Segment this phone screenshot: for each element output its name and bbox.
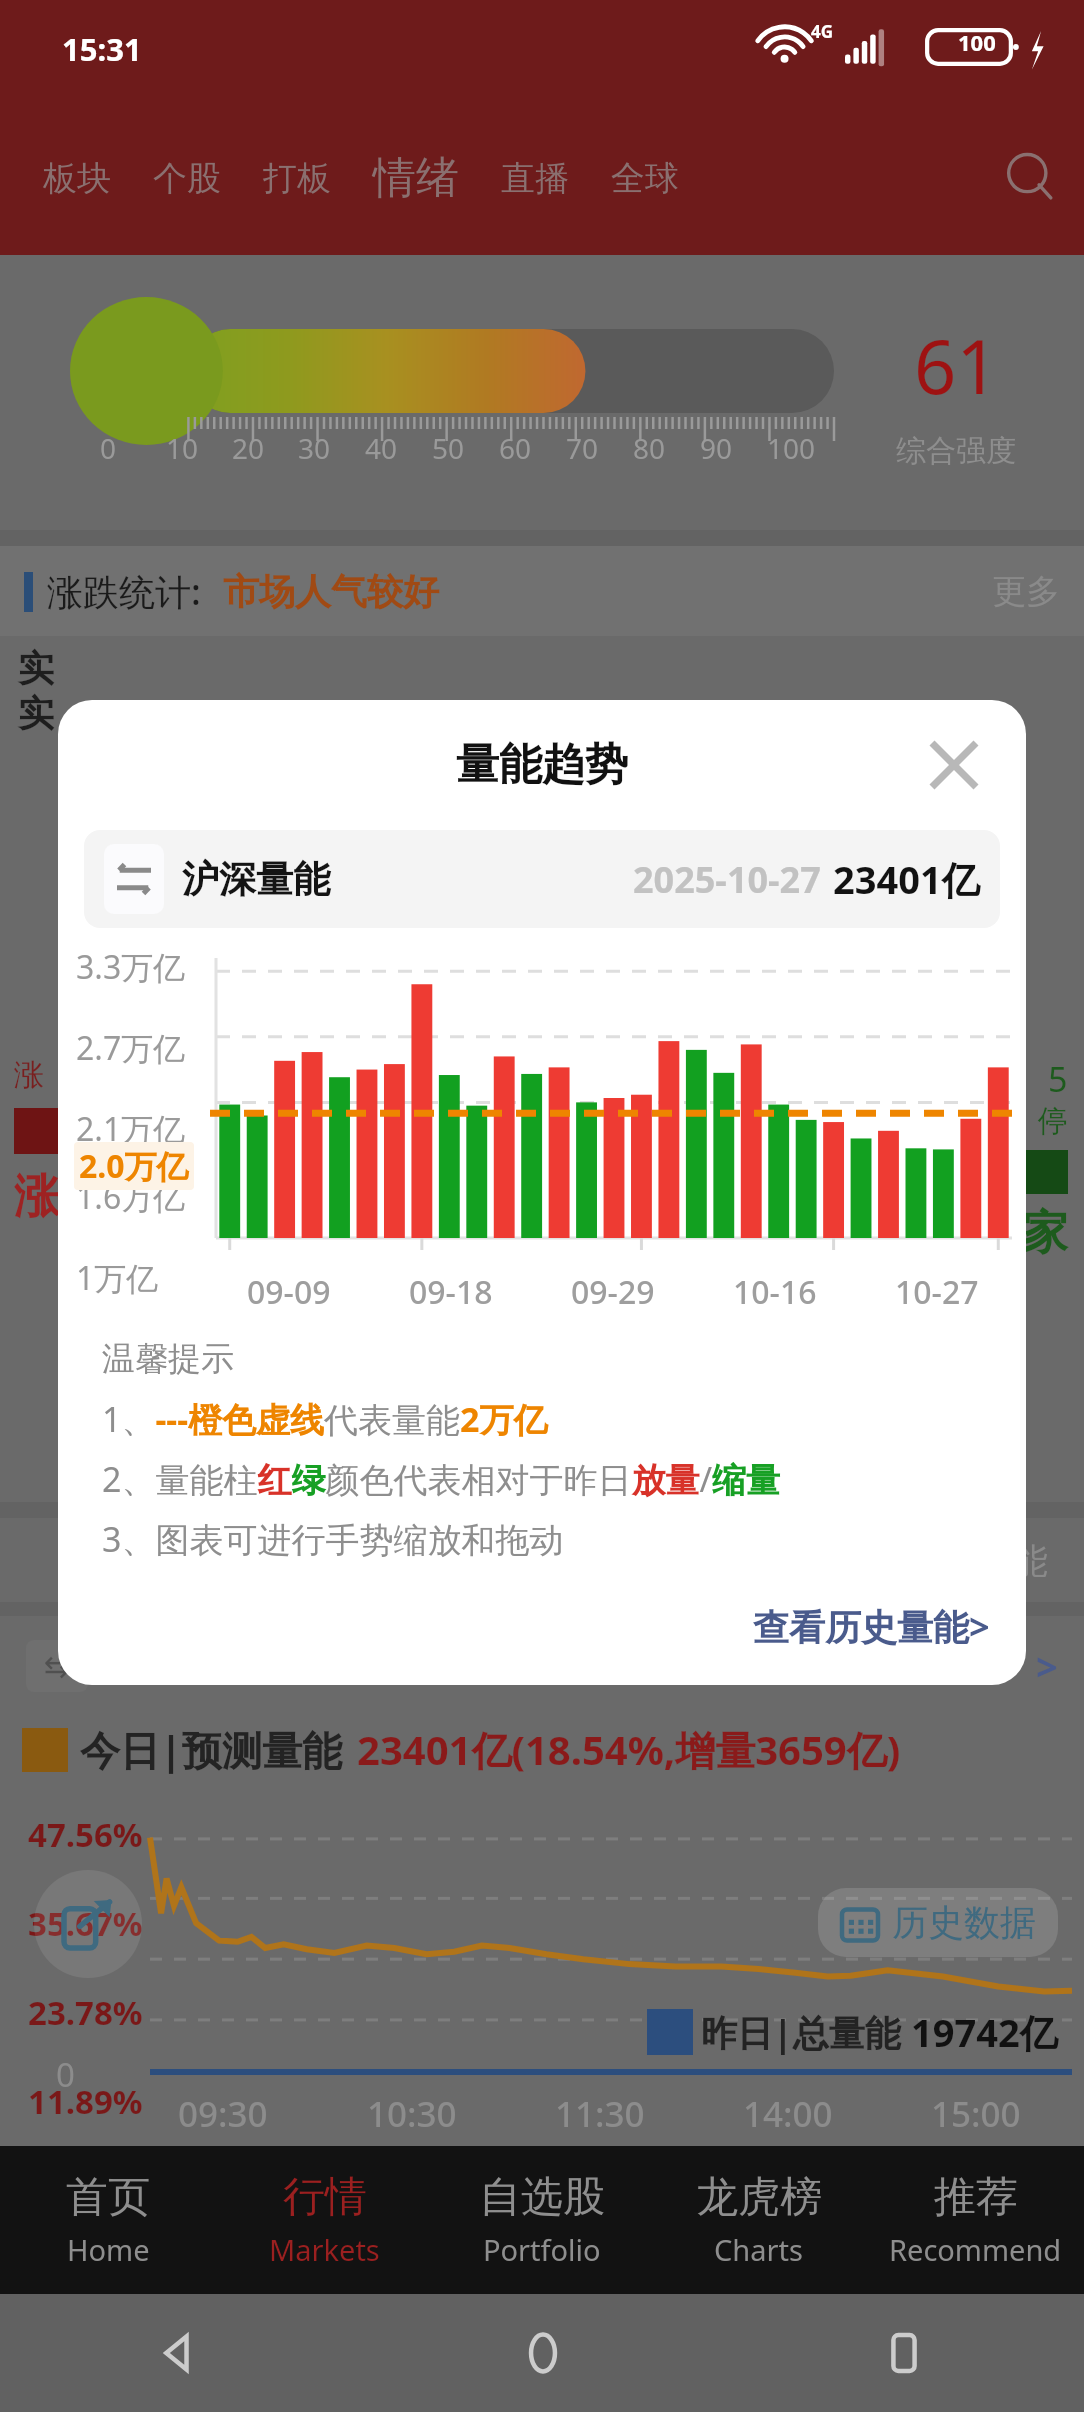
- staticText: 4G: [811, 20, 834, 43]
- staticText: 90: [700, 429, 733, 467]
- staticText: 昨日|总量能: [701, 2008, 901, 2057]
- button[interactable]: 推荐: [867, 2146, 1084, 2294]
- staticText: 23401亿: [833, 853, 980, 905]
- staticText: 涨: [14, 1056, 44, 1094]
- button[interactable]: 行情: [216, 2146, 433, 2294]
- button[interactable]: 龙虎榜: [650, 2146, 867, 2294]
- staticText: 涨跌统计:: [47, 567, 201, 616]
- staticText: 10:30: [367, 2090, 457, 2138]
- staticText: 停: [1038, 1102, 1068, 1140]
- staticText: 龙虎榜: [696, 2171, 822, 2224]
- staticText: 14:00: [743, 2090, 833, 2138]
- staticText: 涨: [14, 1168, 60, 1226]
- staticText: 打板: [263, 157, 331, 200]
- staticText: Charts: [714, 2230, 803, 2269]
- staticText: 19742亿: [911, 2006, 1058, 2058]
- button[interactable]: 全球: [590, 157, 700, 200]
- staticText: 历史数据: [892, 1900, 1036, 1945]
- staticText: 2.0万亿: [79, 1144, 189, 1188]
- staticText: 11:30: [555, 2090, 645, 2138]
- staticText: 行情: [283, 2171, 367, 2224]
- staticText: 市场人气较好: [223, 569, 439, 614]
- staticText: 35.67%: [28, 1901, 143, 1946]
- staticText: 2025-10-27: [633, 855, 821, 904]
- staticText: 全球: [611, 157, 679, 200]
- staticText: 50: [432, 429, 465, 467]
- staticText: Recommend: [889, 2230, 1062, 2269]
- button[interactable]: 更多: [992, 570, 1060, 613]
- staticText: 量能趋势: [456, 738, 628, 792]
- staticText: 1.6万亿: [76, 1175, 186, 1219]
- staticText: 综合强度: [896, 432, 1016, 470]
- staticText: >: [1036, 1640, 1058, 1692]
- staticText: 100: [767, 429, 816, 467]
- staticText: 0: [56, 2052, 75, 2097]
- button[interactable]: 自选股: [433, 2146, 650, 2294]
- staticText: 70: [566, 429, 599, 467]
- staticText: 3.3万亿: [76, 945, 186, 989]
- button[interactable]: 个股: [132, 157, 242, 200]
- staticText: 推荐: [934, 2171, 1018, 2224]
- staticText: 10-16: [733, 1270, 817, 1314]
- button[interactable]: 首页: [0, 2146, 216, 2294]
- staticText: 61: [914, 315, 999, 416]
- button[interactable]: Search: [1000, 147, 1062, 209]
- staticText: Portfolio: [483, 2230, 601, 2269]
- staticText: 09-09: [247, 1270, 331, 1314]
- button[interactable]: 板块: [22, 157, 132, 200]
- staticText: 09-18: [409, 1270, 493, 1314]
- staticText: 温馨提示: [102, 1338, 234, 1380]
- staticText: 2.1万亿: [76, 1107, 186, 1151]
- staticText: 0: [100, 429, 117, 467]
- staticText: 3、图表可进行手势缩放和拖动: [102, 1516, 564, 1562]
- staticText: 自选股: [479, 2171, 605, 2224]
- button[interactable]: 直播: [480, 157, 590, 200]
- staticText: 10: [166, 429, 199, 467]
- staticText: 实: [18, 691, 54, 736]
- staticText: 10-27: [895, 1270, 979, 1314]
- staticText: 47.56%: [28, 1812, 143, 1857]
- button[interactable]: Share: [34, 1870, 142, 1978]
- staticText: 今日|预测量能: [80, 1722, 343, 1777]
- staticText: 个股: [153, 157, 221, 200]
- staticText: 5: [1048, 1056, 1068, 1102]
- staticText: 15:00: [931, 2090, 1021, 2138]
- button[interactable]: 打板: [242, 157, 352, 200]
- staticText: 20: [232, 429, 265, 467]
- staticText: 09-29: [571, 1270, 655, 1314]
- staticText: Home: [67, 2230, 150, 2269]
- staticText: 60: [499, 429, 532, 467]
- staticText: 23401亿(18.54%,增量3659亿): [357, 1722, 901, 1777]
- staticText: 80: [633, 429, 666, 467]
- staticText: 直播: [501, 157, 569, 200]
- staticText: 实: [18, 646, 54, 691]
- button[interactable]: Close: [916, 727, 992, 803]
- button[interactable]: 情绪: [352, 151, 480, 205]
- staticText: 30: [298, 429, 331, 467]
- button[interactable]: 查看历史量能>: [753, 1602, 1026, 1685]
- staticText: 查看历史量能>: [753, 1602, 990, 1651]
- staticText: Markets: [269, 2230, 380, 2269]
- staticText: 1万亿: [76, 1256, 159, 1300]
- staticText: 更多: [992, 570, 1060, 613]
- staticText: 2.7万亿: [76, 1026, 186, 1070]
- staticText: 首页: [66, 2171, 150, 2224]
- staticText: 15:31: [62, 28, 142, 70]
- staticText: 100: [958, 27, 996, 57]
- staticText: 23.78%: [28, 1990, 143, 2035]
- staticText: 家: [1022, 1204, 1068, 1262]
- staticText: 能: [1012, 1538, 1048, 1583]
- staticText: 1、---橙色虚线代表量能2万亿: [102, 1396, 548, 1442]
- staticText: 40: [365, 429, 398, 467]
- staticText: 09:30: [178, 2090, 268, 2138]
- staticText: 情绪: [373, 151, 459, 205]
- button[interactable]: 沪深量能: [84, 830, 1000, 928]
- staticText: 沪深量能: [182, 856, 330, 903]
- button[interactable]: 历史数据: [818, 1888, 1058, 1957]
- staticText: ⇆: [44, 1649, 70, 1684]
- staticText: 板块: [43, 157, 111, 200]
- staticText: 11.89%: [28, 2079, 143, 2124]
- staticText: 2、量能柱红绿颜色代表相对于昨日放量/缩量: [102, 1456, 781, 1502]
